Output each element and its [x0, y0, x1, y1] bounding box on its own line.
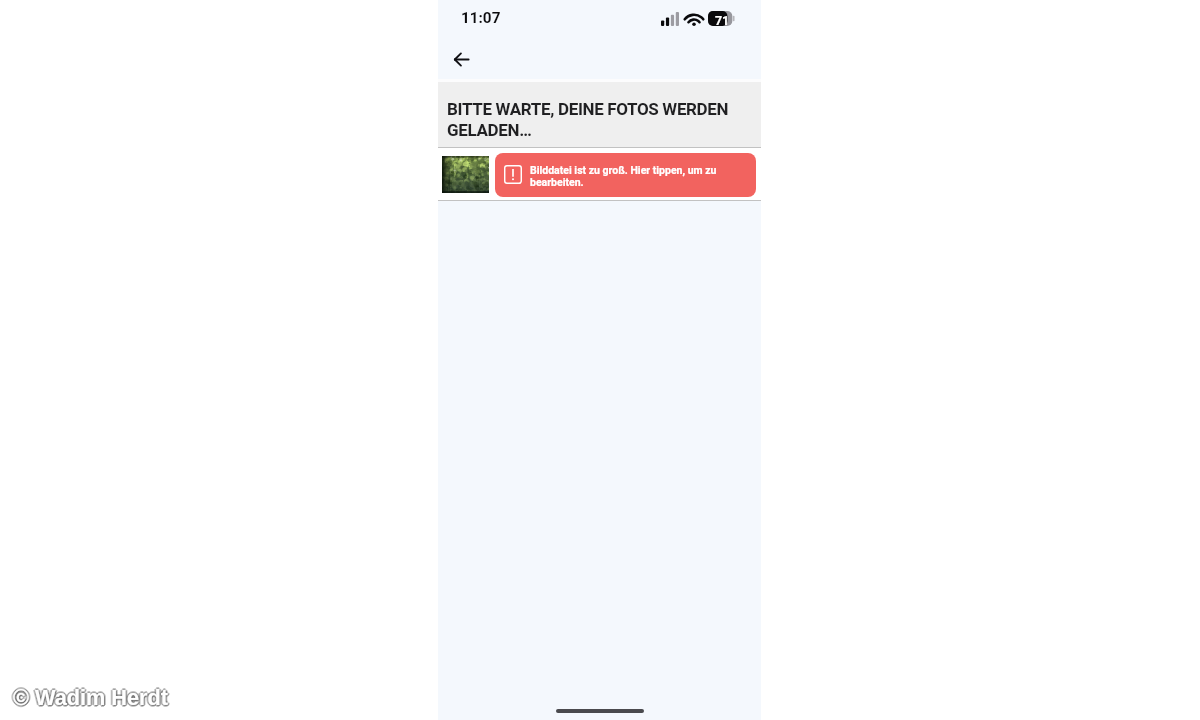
- staticText: Bilddatei ist zu groß. Hier tippen, um z…: [530, 164, 726, 189]
- staticText: BITTE WARTE, DEINE FOTOS WERDEN GELADEN…: [447, 99, 747, 140]
- staticText: © Wadim Herdt: [11, 685, 166, 709]
- staticText: 11:07: [461, 9, 501, 27]
- staticText: © Wadim Herdt: [12, 684, 167, 708]
- staticText: © Wadim Herdt: [14, 686, 169, 710]
- staticText: © Wadim Herdt: [13, 687, 168, 711]
- staticText: © Wadim Herdt: [13, 683, 168, 707]
- staticText: © Wadim Herdt: [13, 683, 168, 707]
- staticText: 71: [715, 13, 730, 28]
- button[interactable]: Bilddatei ist zu groß. Hier tippen, um z…: [495, 153, 756, 197]
- staticText: © Wadim Herdt: [14, 686, 169, 710]
- staticText: © Wadim Herdt: [13, 687, 168, 711]
- staticText: © Wadim Herdt: [12, 686, 167, 710]
- staticText: © Wadim Herdt: [13, 685, 168, 709]
- staticText: © Wadim Herdt: [14, 684, 169, 708]
- button[interactable]: Back: [443, 41, 479, 77]
- staticText: © Wadim Herdt: [15, 685, 170, 709]
- staticText: © Wadim Herdt: [11, 685, 166, 709]
- button[interactable]: Bilddatei ist zu groß. Hier tippen, um z…: [438, 148, 761, 200]
- staticText: © Wadim Herdt: [15, 685, 170, 709]
